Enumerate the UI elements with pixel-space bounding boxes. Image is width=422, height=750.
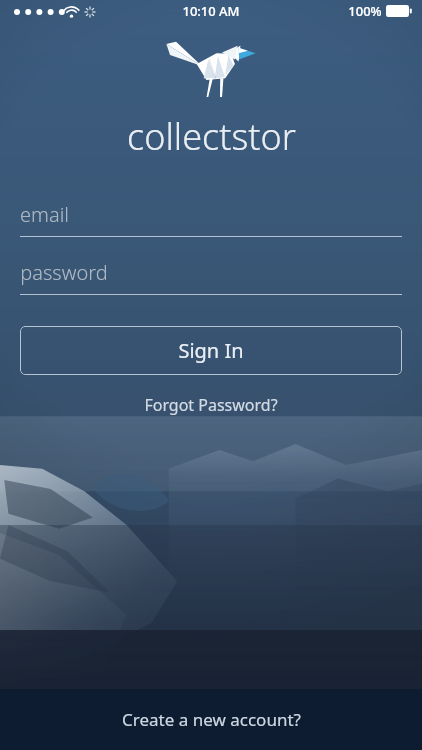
staticText: Forgot Password? (144, 394, 278, 416)
staticText: collectstor (127, 112, 296, 161)
staticText: 100% (348, 2, 382, 20)
staticText: password (20, 259, 108, 286)
button[interactable]: Sign In (20, 326, 402, 375)
other: collectstor bird logo (165, 34, 257, 98)
staticText: Sign In (178, 337, 244, 364)
button[interactable]: Forgot Password? (130, 387, 292, 423)
staticText: email (20, 201, 69, 228)
button[interactable]: Create a new account? (0, 689, 422, 750)
button[interactable]: email (20, 197, 402, 237)
staticText: Create a new account? (122, 708, 301, 731)
staticText: 10:10 AM (182, 2, 240, 20)
button[interactable]: password (20, 255, 402, 295)
